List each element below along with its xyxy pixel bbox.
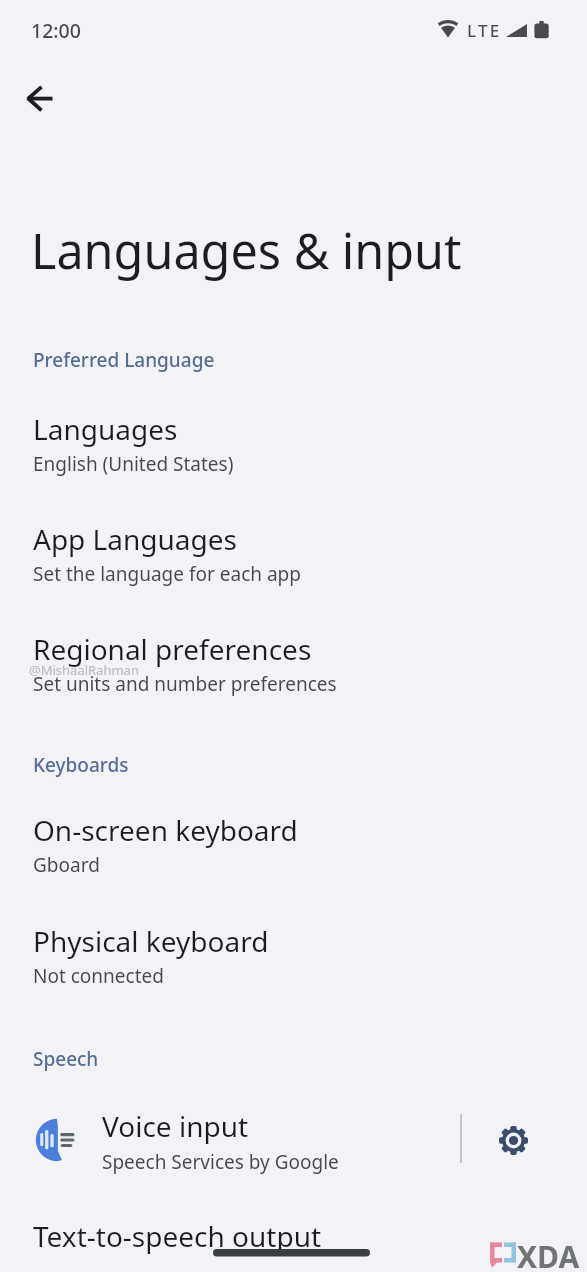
button[interactable]: Regional preferences [0, 614, 587, 720]
staticText: Gboard [33, 852, 100, 878]
staticText: Regional preferences [33, 630, 312, 668]
staticText: Speech Services by Google [102, 1149, 339, 1175]
button[interactable]: Voice input [0, 1096, 587, 1184]
staticText: App Languages [33, 520, 237, 558]
staticText: Keyboards [33, 752, 129, 778]
button[interactable]: On-screen keyboard [0, 795, 587, 901]
staticText: Speech [33, 1046, 99, 1072]
button[interactable] [488, 1115, 538, 1165]
button[interactable] [16, 74, 66, 124]
staticText: Not connected [33, 963, 164, 989]
staticText: Physical keyboard [33, 922, 269, 960]
staticText: Languages & input [31, 217, 462, 283]
staticText: Set units and number preferences [33, 671, 337, 697]
button[interactable]: Text-to-speech output [0, 1196, 587, 1272]
staticText: English (United States) [33, 451, 234, 477]
button[interactable]: Languages [0, 394, 587, 500]
staticText: Set the language for each app [33, 561, 301, 587]
staticText: Text-to-speech output [33, 1217, 322, 1255]
button[interactable]: Physical keyboard [0, 906, 587, 1012]
staticText: Voice input [102, 1107, 249, 1145]
staticText: 12:00 [31, 17, 81, 44]
staticText: Preferred Language [33, 347, 215, 373]
staticText: On-screen keyboard [33, 811, 298, 849]
staticText: LTE [467, 19, 502, 42]
staticText: XDA [517, 1236, 580, 1272]
button[interactable]: App Languages [0, 504, 587, 610]
staticText: @MishaalRahman [29, 661, 139, 679]
staticText: Languages [33, 410, 178, 448]
